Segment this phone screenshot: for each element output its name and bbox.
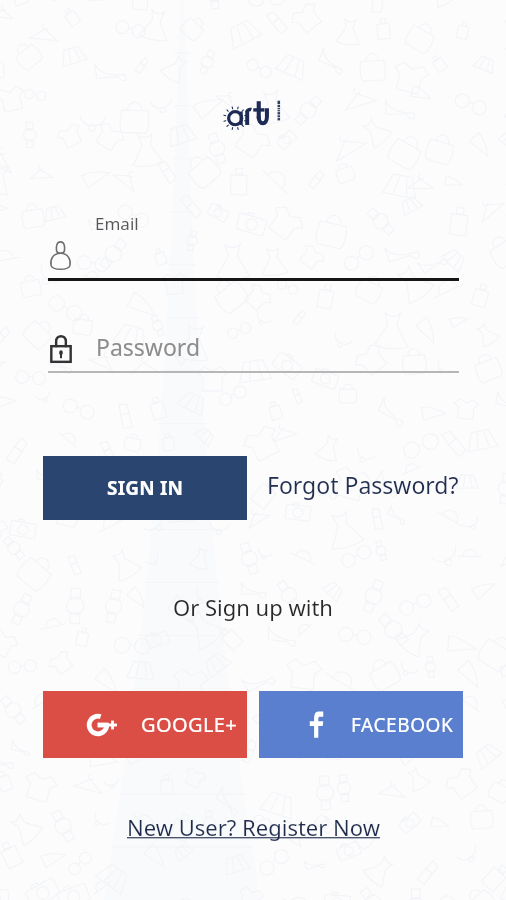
button[interactable]: Email: [48, 206, 459, 281]
staticText: SIGN IN: [107, 475, 184, 501]
other: Password: [50, 334, 72, 363]
staticText: Password: [96, 331, 201, 362]
button[interactable]: GOOGLE+: [43, 691, 247, 758]
button[interactable]: SIGN IN: [43, 456, 247, 520]
button[interactable]: FACEBOOK: [259, 691, 463, 758]
staticText: Email: [95, 212, 139, 235]
other: Email: [50, 241, 71, 270]
staticText: FACEBOOK: [351, 712, 454, 738]
staticText: GOOGLE+: [141, 711, 238, 738]
staticText: Or Sign up with: [173, 592, 333, 622]
button[interactable]: Password: [48, 328, 459, 373]
staticText: Forgot Password?: [267, 469, 459, 500]
button[interactable]: New User? Register Now: [127, 812, 380, 842]
button[interactable]: Forgot Password?: [267, 469, 459, 500]
